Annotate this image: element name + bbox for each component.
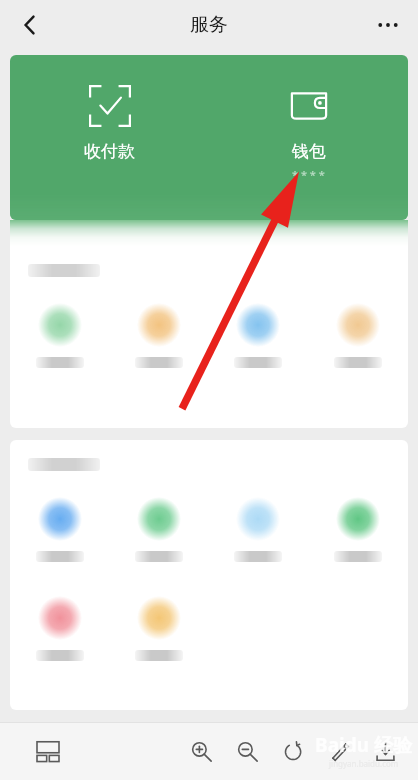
staticText: jingyan.baidu.com	[329, 758, 399, 769]
button[interactable]	[109, 303, 208, 368]
button[interactable]: 收付款	[10, 55, 209, 220]
button[interactable]	[109, 596, 208, 661]
staticText: 服务	[190, 13, 228, 37]
staticText: Baidu 经验	[315, 732, 412, 758]
button[interactable]: 钱包	[209, 55, 408, 220]
button[interactable]	[208, 497, 308, 562]
button[interactable]: Rotate	[274, 732, 312, 770]
button[interactable]	[10, 596, 109, 661]
button[interactable]: More options	[366, 3, 410, 47]
staticText: * * * *	[292, 167, 325, 182]
button[interactable]: Back	[8, 3, 52, 47]
button[interactable]: Layout	[28, 731, 68, 771]
button[interactable]: Download	[366, 732, 404, 770]
button[interactable]	[109, 497, 208, 562]
button[interactable]	[208, 303, 308, 368]
button[interactable]	[10, 303, 109, 368]
button[interactable]: Zoom out	[228, 732, 266, 770]
button[interactable]: Edit	[320, 732, 358, 770]
button[interactable]: Zoom in	[182, 732, 220, 770]
staticText: 钱包	[292, 141, 326, 162]
staticText: 收付款	[84, 141, 135, 162]
button[interactable]	[308, 497, 408, 562]
button[interactable]	[10, 497, 109, 562]
button[interactable]	[308, 303, 408, 368]
